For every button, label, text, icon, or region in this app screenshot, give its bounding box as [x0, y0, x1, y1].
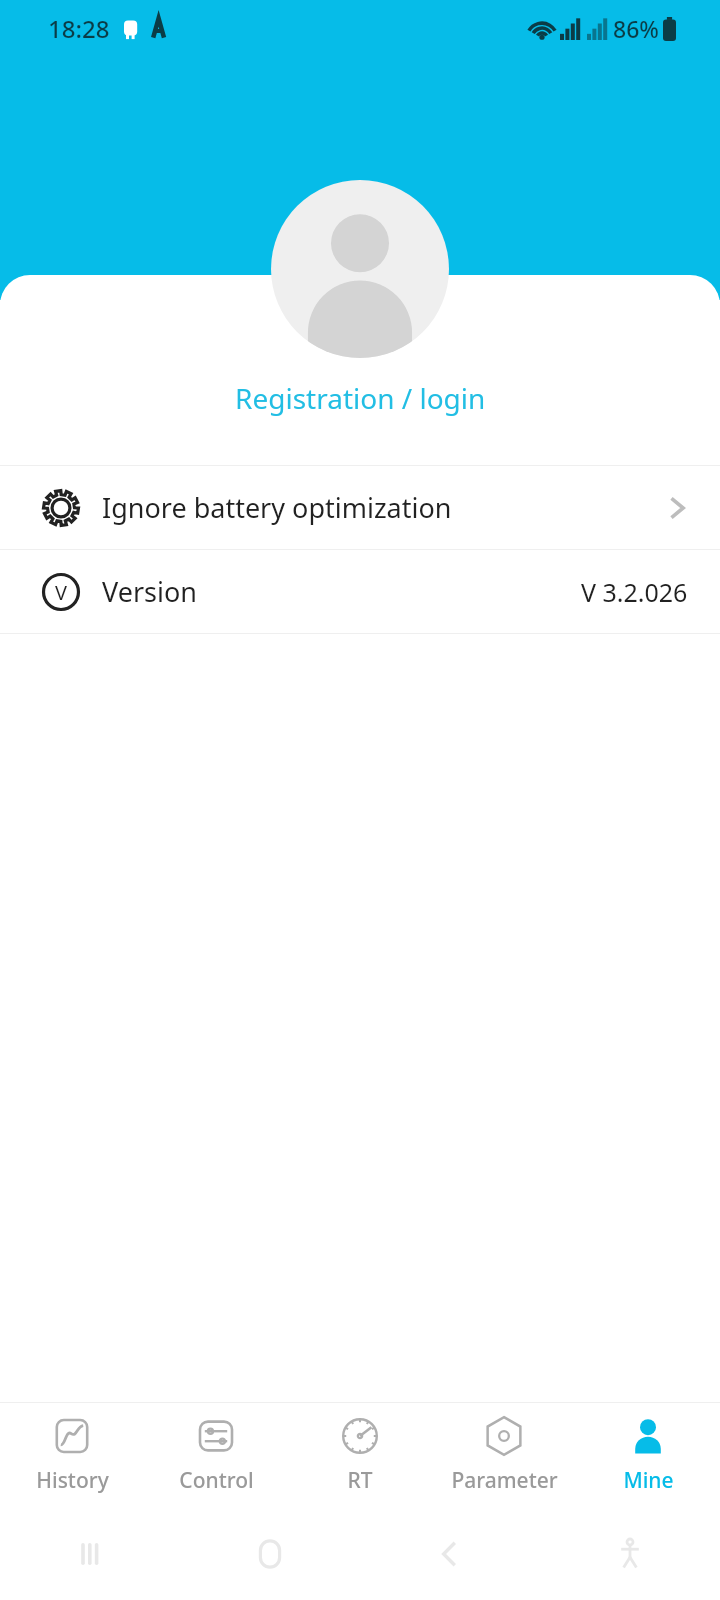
button[interactable]: History — [0, 1403, 144, 1508]
other: Home — [250, 1534, 290, 1574]
button[interactable]: Ignore battery optimization — [0, 466, 720, 549]
button[interactable]: V — [0, 550, 720, 633]
staticText: RT — [347, 1466, 373, 1495]
staticText: 18:28 — [48, 12, 110, 45]
staticText: Parameter — [451, 1466, 558, 1495]
staticText: Mine — [623, 1466, 674, 1495]
other: Accessibility — [610, 1534, 650, 1574]
staticText: History — [36, 1466, 109, 1495]
button[interactable]: RT — [288, 1403, 432, 1508]
button[interactable]: Registration / login — [211, 375, 510, 421]
other: Recent apps — [70, 1534, 110, 1574]
staticText: Ignore battery optimization — [102, 489, 452, 526]
button[interactable]: Parameter — [432, 1403, 576, 1508]
button[interactable]: Control — [144, 1403, 288, 1508]
staticText: Version — [102, 573, 197, 610]
other: Back — [430, 1534, 470, 1574]
staticText: Registration / login — [235, 379, 486, 417]
button[interactable]: Profile avatar — [271, 180, 449, 358]
staticText: Control — [179, 1466, 254, 1495]
staticText: V 3.2.026 — [581, 575, 688, 609]
button[interactable]: Mine — [576, 1403, 720, 1508]
staticText: V — [55, 579, 67, 606]
staticText: 86% — [613, 13, 659, 44]
